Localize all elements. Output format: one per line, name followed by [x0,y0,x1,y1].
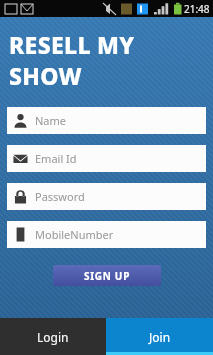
button[interactable]: Join [106,318,213,355]
staticText: Login [37,329,69,345]
button[interactable]: Login [0,318,106,355]
staticText: MobileNumber [35,227,114,242]
staticText: 21:48 [184,2,210,16]
staticText: RESELL MY SHOW [9,29,213,91]
staticText: Name [35,113,67,128]
staticText: Password [35,189,85,204]
staticText: SIGN UP [84,269,131,283]
other: Email [13,151,28,166]
button[interactable]: Name [7,107,206,134]
other: Mobile number [13,227,28,242]
button[interactable]: Password [7,183,206,210]
other: Name [13,113,28,128]
staticText: Email Id [35,151,77,166]
other: Password [13,189,28,204]
button[interactable]: Email [7,145,206,172]
button[interactable]: SIGN UP [53,265,161,286]
button[interactable]: Mobile number [7,221,206,248]
staticText: Join [149,329,171,345]
